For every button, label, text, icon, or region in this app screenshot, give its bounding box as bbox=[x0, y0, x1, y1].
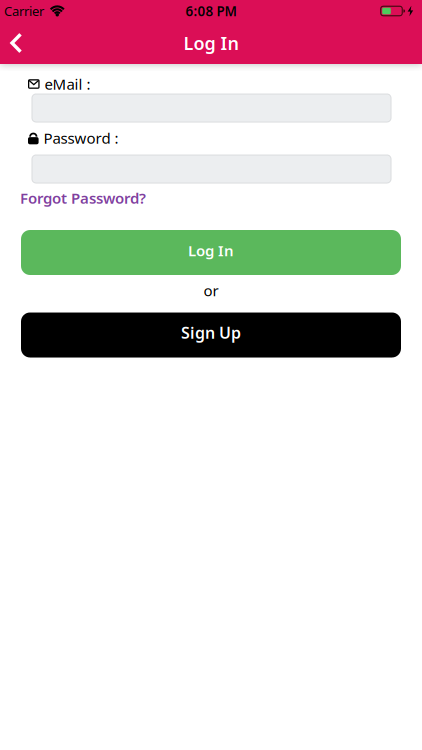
staticText: Password : bbox=[44, 128, 119, 148]
staticText: 6:08 PM bbox=[185, 2, 236, 20]
button[interactable]: Back bbox=[0, 22, 35, 63]
button[interactable]: Sign Up bbox=[21, 312, 401, 357]
staticText: Sign Up bbox=[181, 322, 241, 343]
staticText: Carrier bbox=[4, 2, 44, 20]
staticText: Log In bbox=[183, 31, 238, 55]
staticText: Forgot Password? bbox=[20, 188, 146, 208]
staticText: or bbox=[203, 280, 218, 300]
button[interactable]: Log In bbox=[21, 230, 401, 275]
button[interactable]: Forgot Password? bbox=[20, 188, 146, 208]
staticText: eMail : bbox=[45, 74, 91, 94]
staticText: Log In bbox=[188, 240, 234, 260]
